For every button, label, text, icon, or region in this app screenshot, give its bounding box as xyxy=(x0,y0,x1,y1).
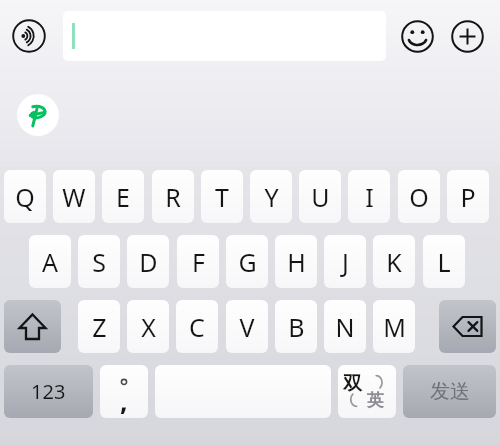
button[interactable]: T xyxy=(201,170,243,223)
staticText: 英 xyxy=(367,390,384,411)
staticText: F xyxy=(192,245,205,279)
staticText: Q xyxy=(15,180,35,214)
button[interactable]: Emoji xyxy=(398,17,436,55)
button[interactable]: W xyxy=(53,170,95,223)
button[interactable]: X xyxy=(127,300,169,353)
button[interactable]: O xyxy=(398,170,440,223)
button[interactable]: S xyxy=(78,235,120,288)
button[interactable]: I xyxy=(348,170,390,223)
staticText: V xyxy=(239,310,255,344)
staticText: H xyxy=(287,245,306,279)
button[interactable]: C xyxy=(176,300,218,353)
button[interactable]: Comma xyxy=(100,365,148,418)
staticText: O xyxy=(409,180,429,214)
button[interactable]: M xyxy=(373,300,415,353)
button[interactable]: H xyxy=(275,235,317,288)
button[interactable] xyxy=(63,11,386,61)
staticText: G xyxy=(238,245,257,279)
button[interactable]: Switch input xyxy=(338,365,396,418)
button[interactable]: L xyxy=(423,235,465,288)
button[interactable]: F xyxy=(177,235,219,288)
staticText: W xyxy=(62,180,86,214)
button[interactable]: J xyxy=(324,235,366,288)
button[interactable]: Backspace xyxy=(439,300,496,353)
staticText: Z xyxy=(92,310,107,344)
button[interactable]: Numbers xyxy=(4,365,93,418)
staticText: J xyxy=(342,245,349,279)
staticText: Y xyxy=(264,180,279,214)
staticText: I xyxy=(365,180,374,214)
staticText: D xyxy=(139,245,158,279)
staticText: 双 xyxy=(343,372,362,396)
staticText: K xyxy=(386,245,402,279)
button[interactable]: Z xyxy=(78,300,120,353)
button[interactable]: Y xyxy=(250,170,292,223)
staticText: R xyxy=(165,180,181,214)
button[interactable]: Voice input xyxy=(10,17,48,55)
staticText: C xyxy=(189,310,205,344)
button[interactable]: N xyxy=(324,300,366,353)
staticText: 发送 xyxy=(430,379,470,404)
staticText: L xyxy=(437,245,451,279)
button[interactable]: G xyxy=(226,235,268,288)
button[interactable]: E xyxy=(102,170,144,223)
button[interactable]: Input method logo xyxy=(17,94,59,136)
staticText: X xyxy=(141,310,156,344)
staticText: P xyxy=(460,180,476,214)
staticText: E xyxy=(116,180,130,214)
button[interactable]: B xyxy=(275,300,317,353)
button[interactable]: D xyxy=(127,235,169,288)
button[interactable]: U xyxy=(299,170,341,223)
staticText: 123 xyxy=(31,378,66,405)
button[interactable]: R xyxy=(152,170,194,223)
staticText: A xyxy=(42,245,58,279)
button[interactable]: More xyxy=(448,17,486,55)
staticText: N xyxy=(335,310,355,344)
staticText: U xyxy=(311,180,330,214)
staticText: , xyxy=(120,382,128,419)
button[interactable]: A xyxy=(29,235,71,288)
button[interactable]: K xyxy=(373,235,415,288)
button[interactable]: V xyxy=(226,300,268,353)
button[interactable]: Shift xyxy=(4,300,61,353)
staticText: S xyxy=(92,245,106,279)
staticText: T xyxy=(215,180,229,214)
staticText: M xyxy=(383,310,406,344)
staticText: B xyxy=(288,310,305,344)
button[interactable]: P xyxy=(447,170,489,223)
button[interactable]: Send xyxy=(403,365,496,418)
button[interactable]: Q xyxy=(4,170,46,223)
